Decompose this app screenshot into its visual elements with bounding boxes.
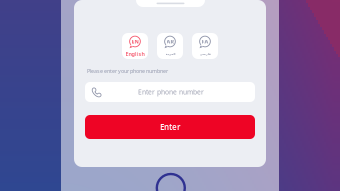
button[interactable]: Enter bbox=[85, 115, 255, 139]
staticText: AR bbox=[166, 38, 173, 45]
staticText: فارسی bbox=[199, 52, 210, 55]
staticText: Please enter your phone numbner bbox=[87, 67, 168, 75]
staticText: FA bbox=[201, 38, 208, 45]
staticText: Enter bbox=[160, 122, 180, 132]
staticText: EN bbox=[131, 38, 138, 45]
button[interactable]: AR bbox=[157, 33, 183, 59]
staticText: Enter phone number bbox=[138, 88, 204, 96]
staticText: العربية bbox=[165, 52, 175, 55]
button[interactable]: EN bbox=[122, 33, 148, 59]
button[interactable]: FA bbox=[192, 33, 218, 59]
staticText: English bbox=[125, 50, 144, 58]
